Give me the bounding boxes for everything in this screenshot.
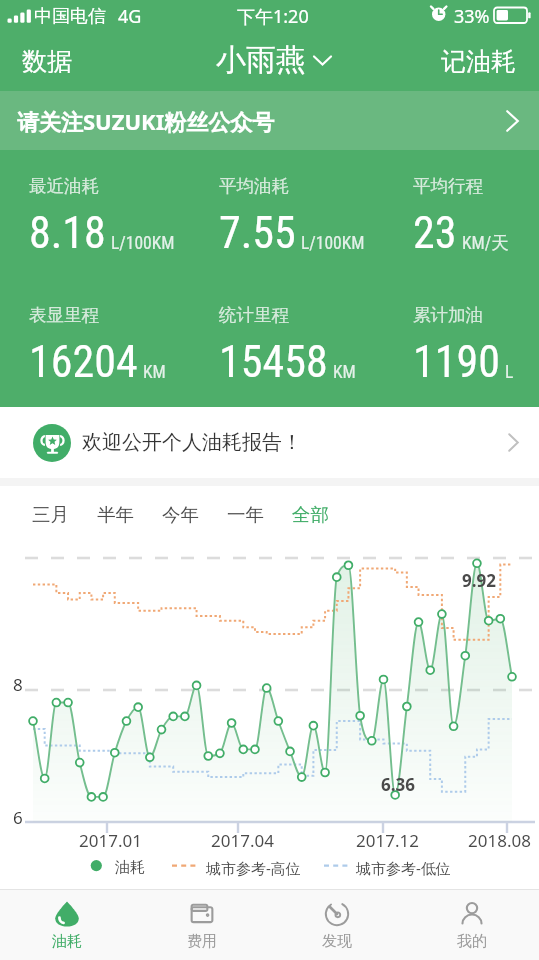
button[interactable]: 发现: [269, 890, 404, 960]
staticText: 请关注SUZUKI粉丝公众号: [17, 106, 275, 136]
button[interactable]: 小雨燕: [208, 37, 340, 83]
staticText: 数据: [22, 46, 72, 73]
button[interactable]: 油耗: [0, 890, 134, 960]
staticText: 油耗: [52, 932, 82, 951]
staticText: KM: [333, 362, 356, 383]
staticText: 2017.04: [211, 829, 274, 851]
button[interactable]: 一年: [213, 493, 278, 536]
staticText: 三月: [32, 503, 69, 526]
staticText: 我的: [457, 932, 487, 951]
staticText: 半年: [97, 503, 134, 526]
staticText: 全部: [292, 503, 329, 526]
button[interactable]: 费用: [134, 890, 269, 960]
staticText: 表显里程: [29, 304, 99, 326]
staticText: 6: [13, 806, 23, 829]
staticText: 9.92: [462, 569, 496, 592]
button[interactable]: 数据: [0, 35, 86, 84]
staticText: 小雨燕: [216, 41, 306, 79]
staticText: 4G: [118, 4, 142, 29]
staticText: 8.18: [29, 207, 106, 259]
staticText: 平均行程: [413, 175, 483, 197]
staticText: L/100KM: [111, 233, 175, 254]
staticText: 统计里程: [219, 304, 289, 326]
staticText: 16204: [29, 336, 138, 388]
staticText: 15458: [219, 336, 328, 388]
button[interactable]: 记油耗: [427, 35, 539, 84]
staticText: L/100KM: [301, 233, 365, 254]
staticText: KM/天: [462, 232, 509, 254]
staticText: L: [505, 362, 514, 383]
staticText: 2017.12: [356, 829, 419, 851]
staticText: 最近油耗: [29, 175, 99, 197]
staticText: 累计加油: [413, 304, 483, 326]
button[interactable]: 我的: [404, 890, 539, 960]
staticText: 记油耗: [441, 46, 516, 73]
staticText: 城市参考-低位: [356, 858, 451, 878]
staticText: 2017.01: [79, 829, 142, 851]
button[interactable]: 三月: [18, 493, 83, 536]
button[interactable]: 半年: [83, 493, 148, 536]
staticText: 1190: [413, 336, 500, 388]
button[interactable]: 请关注SUZUKI粉丝公众号: [0, 91, 539, 150]
button[interactable]: 全部: [278, 493, 343, 536]
button[interactable]: 今年: [148, 493, 213, 536]
staticText: 平均油耗: [219, 175, 289, 197]
staticText: 欢迎公开个人油耗报告！: [82, 430, 302, 455]
staticText: 发现: [322, 932, 352, 951]
staticText: 2018.08: [468, 829, 531, 851]
button[interactable]: 欢迎公开个人油耗报告！: [0, 407, 539, 478]
staticText: 城市参考-高位: [206, 858, 301, 878]
staticText: 33%: [454, 4, 490, 29]
staticText: 23: [413, 207, 457, 259]
staticText: 中国电信: [34, 5, 106, 28]
staticText: KM: [143, 362, 166, 383]
staticText: 下午1:20: [237, 4, 309, 29]
staticText: 7.55: [219, 207, 296, 259]
staticText: 一年: [227, 503, 264, 526]
staticText: 8: [13, 673, 23, 696]
staticText: 费用: [187, 932, 217, 951]
staticText: 油耗: [115, 858, 145, 877]
staticText: 6.36: [381, 773, 415, 796]
staticText: 今年: [162, 503, 199, 526]
